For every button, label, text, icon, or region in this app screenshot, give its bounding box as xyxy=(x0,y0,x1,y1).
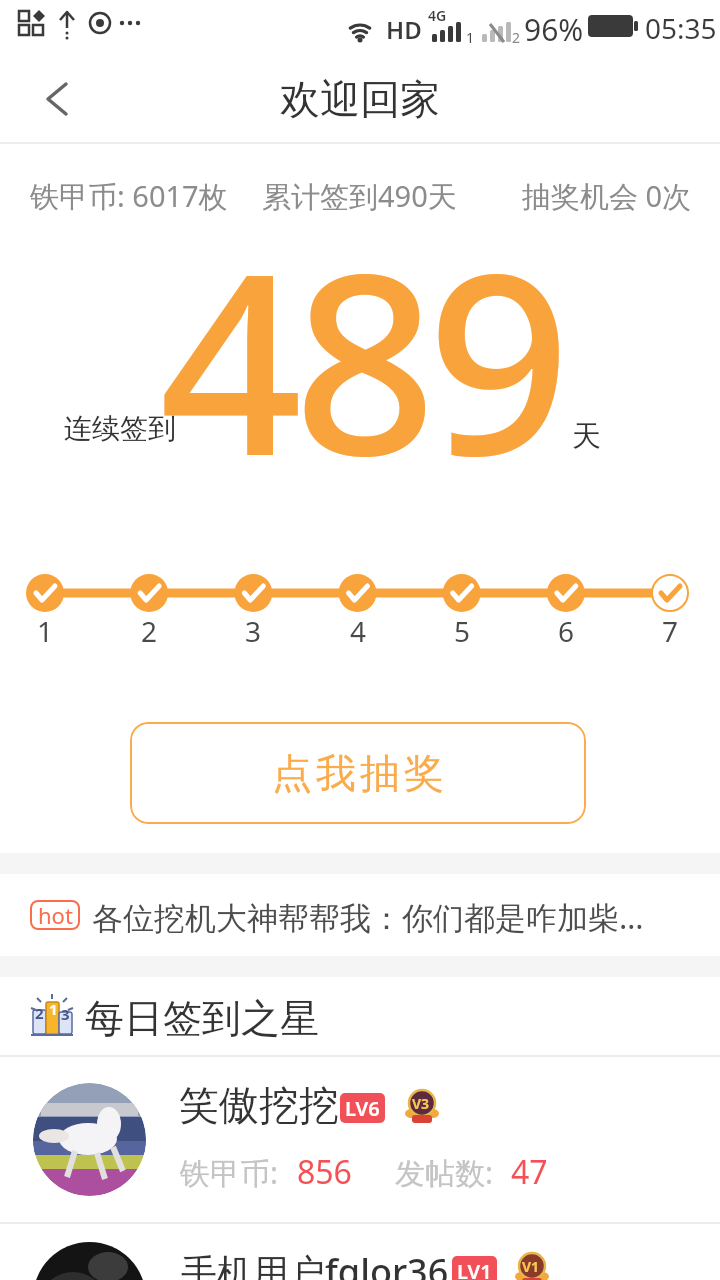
staticText: 手机用户fglor36 xyxy=(181,1247,449,1280)
staticText: LV6 xyxy=(345,1095,380,1122)
button[interactable]: 手机用户fglor36 xyxy=(0,1224,720,1280)
staticText: 2 xyxy=(512,28,521,47)
staticText: 连续签到 xyxy=(64,411,176,446)
staticText: 4G xyxy=(428,6,447,25)
button[interactable]: 点我抽奖 xyxy=(130,722,586,824)
staticText: 2 xyxy=(35,1003,44,1023)
staticText: HD xyxy=(386,13,422,46)
staticText: 天 xyxy=(572,418,601,455)
button[interactable] xyxy=(40,80,76,120)
staticText: 05:35 xyxy=(645,9,717,47)
button[interactable]: 笑傲挖挖 xyxy=(0,1057,720,1222)
staticText: V3 xyxy=(412,1094,430,1113)
staticText: 5 xyxy=(454,612,471,648)
staticText: 点我抽奖 xyxy=(270,748,446,798)
staticText: 1 xyxy=(37,612,54,648)
staticText: V1 xyxy=(522,1257,540,1276)
staticText: 6 xyxy=(558,612,575,648)
staticText: LV1 xyxy=(457,1258,492,1280)
staticText: 笑傲挖挖 xyxy=(179,1080,339,1130)
staticText: 累计签到490天 xyxy=(262,176,457,216)
staticText: 铁甲币: 6017枚 xyxy=(30,176,228,216)
staticText: 1 xyxy=(49,999,58,1019)
staticText: 抽奖机会 0次 xyxy=(522,176,692,216)
staticText: 856 xyxy=(297,1150,352,1194)
staticText: 96% xyxy=(524,9,584,50)
staticText: 2 xyxy=(141,612,158,648)
staticText: hot xyxy=(38,900,73,930)
staticText: 欢迎回家 xyxy=(280,74,440,124)
staticText: 489 xyxy=(164,188,566,529)
staticText: 铁甲币: xyxy=(180,1152,279,1193)
staticText: 1 xyxy=(466,28,475,47)
staticText: 47 xyxy=(511,1150,548,1194)
staticText: 各位挖机大神帮帮我：你们都是咋加柴… xyxy=(92,896,644,938)
staticText: 7 xyxy=(662,612,679,648)
button[interactable]: hot xyxy=(0,874,720,956)
staticText: 3 xyxy=(245,612,262,648)
staticText: 3 xyxy=(61,1004,70,1024)
staticText: 发帖数: xyxy=(395,1152,494,1193)
button[interactable]: 2 xyxy=(0,977,720,1055)
staticText: 每日签到之星 xyxy=(85,994,319,1043)
staticText: 4 xyxy=(350,612,367,648)
